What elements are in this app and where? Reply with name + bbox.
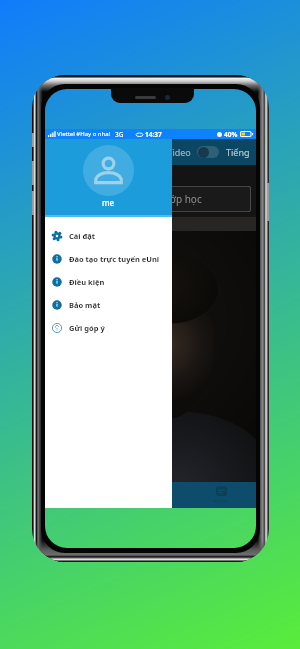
staticText: 3G [115,130,124,139]
staticText: Tiếng [226,146,250,158]
staticText: 40% [224,130,238,139]
staticText: Video [167,146,191,158]
button[interactable]: Điều kiện [45,270,172,293]
button[interactable]: Bảo mật [45,293,172,316]
staticText: Gửi góp ý [69,323,105,333]
button[interactable]: Họp [116,482,186,508]
staticText: me [102,197,115,208]
staticText: Bảo mật [69,300,101,310]
staticText: Khác [214,497,228,505]
staticText: Cài đặt [69,231,96,241]
staticText: 14:37 [145,130,162,139]
staticText: Viettel #Hay o nha! [57,130,111,138]
button[interactable]: Cài đặt [45,224,172,247]
staticText: Điều kiện [69,277,105,287]
button[interactable]: Khác [186,482,256,508]
button[interactable]: Đào tạo trực tuyến eUni [45,247,172,270]
staticText: Tìm kiếm tên cuộc họp/lớp học [57,192,202,206]
staticText: Đào tạo trực tuyến eUni [69,254,160,264]
button[interactable]: Toggle video mode [197,146,219,158]
button[interactable]: Gửi góp ý [45,316,172,339]
button[interactable]: Tìm kiếm tên cuộc họp/lớp học [50,186,251,212]
